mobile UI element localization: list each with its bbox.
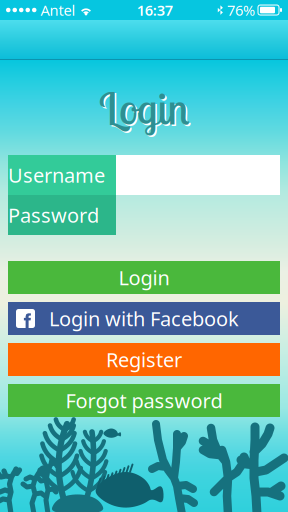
staticText: 76% (227, 0, 255, 20)
staticText: Username (8, 162, 105, 188)
staticText: Register (106, 346, 182, 373)
button[interactable]: Login (8, 261, 280, 294)
staticText: Login (118, 264, 169, 291)
button[interactable]: Forgot password (8, 384, 280, 417)
staticText: Password (8, 202, 99, 228)
staticText: Login (99, 80, 189, 135)
button[interactable]: Register (8, 343, 280, 376)
staticText: Antel (40, 0, 75, 20)
button[interactable]: Login with Facebook (8, 302, 280, 335)
staticText: Login with Facebook (49, 305, 239, 332)
staticText: Forgot password (65, 387, 222, 414)
staticText: Login (101, 82, 191, 137)
staticText: 16:37 (137, 0, 173, 20)
